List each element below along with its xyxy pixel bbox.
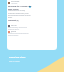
staticText: Julia Ray: [11, 31, 17, 33]
staticText: Moving to a new city was hard: [8, 5, 32, 11]
staticText: Lorem ipsum dolor sit amet, consectetur …: [8, 10, 31, 18]
button[interactable]: Anna Schmidt: [8, 1, 20, 4]
staticText: Comments (2): [8, 19, 19, 21]
staticText: Mark Lee: [11, 25, 17, 27]
button[interactable]: Mark Lee: [8, 25, 31, 31]
button[interactable]: Julia Ray: [8, 31, 31, 37]
staticText: Share this story: [9, 56, 26, 59]
button[interactable]: Bookmark: [29, 6, 31, 8]
staticText: with a friend: [9, 60, 20, 62]
staticText: 3 hours ago: [11, 3, 18, 4]
staticText: Anna Schmidt: [11, 1, 20, 3]
staticText: Really helpful tips, thanks a lot for sh…: [8, 27, 31, 31]
staticText: I moved last year and felt exactly the s…: [8, 33, 31, 37]
